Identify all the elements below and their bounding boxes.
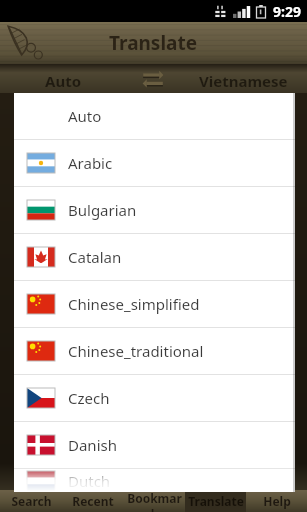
staticText: Czech bbox=[68, 388, 110, 408]
staticText: 9:29 bbox=[273, 2, 301, 21]
button[interactable]: Swap languages bbox=[127, 64, 179, 93]
button[interactable]: Dutch bbox=[14, 469, 295, 492]
staticText: Catalan bbox=[68, 247, 122, 267]
button[interactable]: Vietnamese bbox=[179, 64, 307, 93]
staticText: Bookmark bbox=[124, 490, 185, 512]
staticText: Dutch bbox=[68, 471, 111, 491]
button[interactable]: Bookmark bbox=[124, 490, 185, 512]
staticText: Arabic bbox=[68, 153, 113, 173]
button[interactable]: Search bbox=[0, 490, 62, 512]
staticText: Chinese_simplified bbox=[68, 294, 200, 314]
button[interactable]: Help bbox=[246, 490, 307, 512]
button[interactable]: Auto bbox=[0, 64, 127, 93]
staticText: Danish bbox=[68, 435, 117, 455]
button[interactable]: Czech bbox=[14, 375, 295, 421]
staticText: Search bbox=[11, 493, 52, 509]
staticText: Auto bbox=[45, 71, 82, 91]
staticText: Recent bbox=[72, 493, 114, 509]
button[interactable]: Chinese_simplified bbox=[14, 281, 295, 327]
staticText: Vietnamese bbox=[199, 71, 288, 91]
other: App logo bbox=[4, 23, 56, 63]
staticText: Auto bbox=[68, 106, 102, 126]
button[interactable]: Translate bbox=[185, 490, 246, 512]
button[interactable]: Danish bbox=[14, 422, 295, 468]
button[interactable]: Auto bbox=[14, 93, 295, 139]
staticText: Chinese_traditional bbox=[68, 341, 204, 361]
button[interactable]: Catalan bbox=[14, 234, 295, 280]
button[interactable]: Arabic bbox=[14, 140, 295, 186]
button[interactable]: Recent bbox=[62, 490, 124, 512]
staticText: Bulgarian bbox=[68, 200, 137, 220]
staticText: Translate bbox=[188, 493, 244, 509]
staticText: Help bbox=[263, 493, 291, 509]
button[interactable]: Chinese_traditional bbox=[14, 328, 295, 374]
staticText: Translate bbox=[109, 30, 198, 56]
button[interactable]: Bulgarian bbox=[14, 187, 295, 233]
